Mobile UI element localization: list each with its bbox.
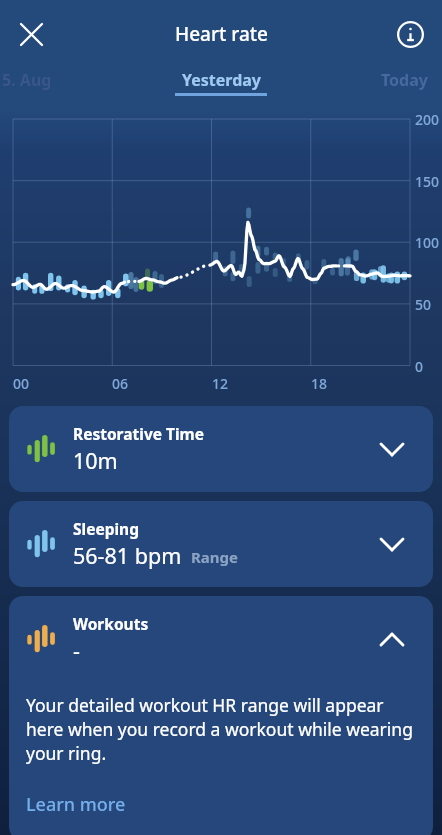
button[interactable]: 5. Aug (0, 62, 76, 96)
staticText: Range (191, 547, 239, 567)
staticText: 0 (415, 357, 424, 376)
staticText: Your detailed workout HR range will appe… (26, 693, 417, 765)
staticText: Yesterday (182, 69, 261, 91)
staticText: 200 (415, 110, 440, 129)
staticText: 06 (112, 374, 129, 393)
staticText: 56-81 bpm (73, 541, 182, 570)
button[interactable]: Close (9, 12, 54, 57)
button[interactable]: Today (376, 62, 442, 96)
staticText: 00 (13, 374, 30, 393)
button[interactable]: Workouts (9, 596, 433, 835)
staticText: 150 (415, 172, 440, 191)
staticText: Today (381, 69, 428, 91)
button[interactable]: Sleeping (9, 501, 433, 587)
staticText: Heart rate (175, 21, 268, 47)
staticText: 50 (415, 295, 432, 314)
staticText: Restorative Time (73, 423, 204, 444)
staticText: 12 (212, 374, 229, 393)
staticText: Sleeping (73, 518, 139, 539)
staticText: 18 (311, 374, 328, 393)
staticText: 5. Aug (2, 69, 52, 91)
button[interactable]: Learn more (26, 792, 126, 817)
button[interactable]: Yesterday (160, 60, 282, 98)
staticText: - (73, 636, 80, 665)
staticText: 100 (415, 233, 440, 252)
button[interactable]: Information (388, 12, 433, 57)
button[interactable]: Restorative Time (9, 406, 433, 492)
staticText: 10m (73, 446, 118, 475)
staticText: Workouts (73, 613, 149, 634)
